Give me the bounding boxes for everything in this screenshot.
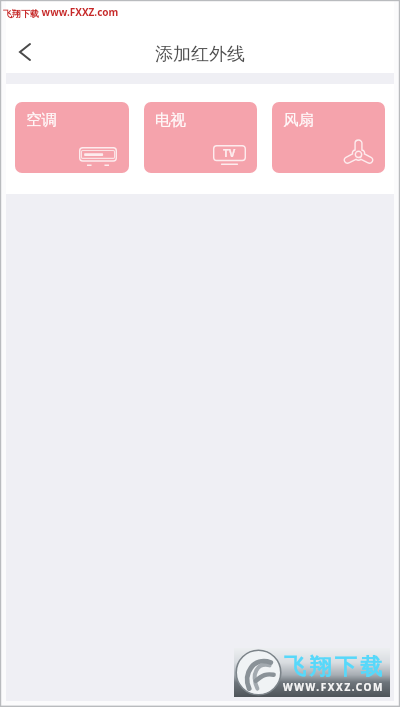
button[interactable]: 电视 — [144, 102, 257, 173]
staticText: 风扇 — [283, 110, 314, 130]
staticText: 飞翔下载 — [3, 8, 39, 19]
staticText: 飞翔下载 — [284, 653, 386, 681]
staticText: 空调 — [26, 110, 57, 130]
staticText: WWW.FXXZ.COM — [283, 680, 385, 694]
staticText: 添加红外线 — [155, 43, 245, 66]
staticText: 电视 — [155, 110, 186, 130]
staticText: TV — [223, 146, 236, 160]
staticText: www.FXXZ.com — [39, 5, 119, 19]
button[interactable]: Back — [5, 32, 45, 72]
button[interactable]: 风扇 — [272, 102, 385, 173]
button[interactable]: 空调 — [15, 102, 129, 173]
